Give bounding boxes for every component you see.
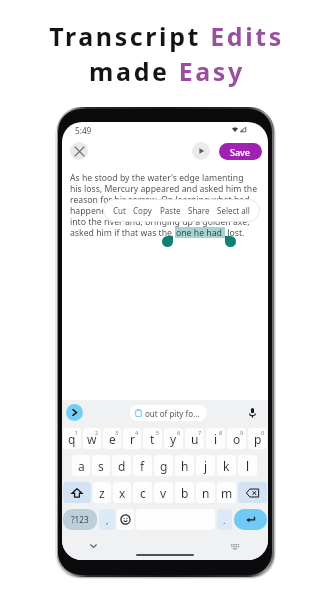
button[interactable]: [63, 482, 91, 503]
button[interactable]: Voice input: [246, 407, 258, 419]
button[interactable]: ?123: [63, 509, 97, 530]
staticText: y: [170, 431, 177, 447]
button[interactable]: Copy: [131, 199, 154, 222]
staticText: k: [223, 458, 230, 474]
button[interactable]: z: [93, 482, 111, 503]
staticText: into the river and, bringing up a golden…: [70, 216, 250, 227]
staticText: 5:49: [75, 125, 92, 136]
button[interactable]: [238, 482, 267, 503]
button[interactable]: h: [175, 455, 194, 476]
staticText: his loss, Mercury appeared and asked him…: [70, 183, 258, 194]
staticText: 4: [135, 429, 139, 436]
staticText: n: [202, 485, 210, 501]
staticText: l: [246, 458, 250, 474]
button[interactable]: Select all: [215, 199, 252, 222]
staticText: 7: [198, 429, 202, 436]
staticText: m: [221, 485, 233, 501]
button[interactable]: Hide keyboard: [87, 540, 99, 552]
button[interactable]: .: [217, 509, 232, 530]
button[interactable]: g: [154, 455, 173, 476]
staticText: Cut: [113, 205, 126, 216]
button[interactable]: m: [217, 482, 236, 503]
staticText: 3: [115, 429, 119, 436]
staticText: q: [68, 431, 76, 447]
button[interactable]: Switch keyboard: [229, 541, 241, 553]
button[interactable]: Close: [70, 142, 88, 160]
staticText: ?123: [71, 514, 89, 525]
button[interactable]: y: [164, 428, 183, 449]
staticText: Transcript Edits: [49, 19, 284, 53]
button[interactable]: a: [72, 455, 90, 476]
staticText: j: [204, 458, 208, 474]
button[interactable]: i: [206, 428, 225, 449]
button[interactable]: Save: [219, 143, 262, 160]
button[interactable]: f: [133, 455, 152, 476]
button[interactable]: c: [133, 482, 152, 503]
staticText: z: [99, 485, 105, 501]
staticText: Share: [188, 205, 210, 216]
staticText: g: [160, 458, 168, 474]
button[interactable]: s: [92, 455, 110, 476]
button[interactable]: Cut: [111, 199, 128, 222]
button[interactable]: ,: [99, 509, 115, 530]
staticText: a: [78, 458, 85, 474]
staticText: out of pity fo...: [145, 408, 200, 419]
button[interactable]: Share: [186, 199, 212, 222]
staticText: Paste: [160, 205, 181, 216]
staticText: 8: [219, 429, 223, 436]
staticText: made Easy: [89, 54, 245, 88]
button[interactable]: x: [113, 482, 131, 503]
staticText: one he had: [176, 227, 222, 238]
button[interactable]: o: [227, 428, 246, 449]
staticText: ,: [106, 514, 109, 526]
button[interactable]: l: [238, 455, 257, 476]
button[interactable]: Play: [192, 142, 210, 160]
staticText: 2: [95, 429, 99, 436]
button[interactable]: u: [185, 428, 204, 449]
staticText: happened, out of pity for his distress, …: [70, 205, 258, 216]
staticText: d: [118, 458, 126, 474]
button[interactable]: d: [112, 455, 131, 476]
button[interactable]: j: [196, 455, 215, 476]
staticText: c: [140, 485, 146, 501]
button[interactable]: More suggestions: [66, 404, 83, 421]
staticText: r: [130, 431, 135, 447]
staticText: o: [233, 431, 241, 447]
staticText: asked him if that was the: [70, 227, 175, 238]
staticText: f: [140, 458, 145, 474]
button[interactable]: Paste: [158, 199, 183, 222]
button[interactable]: b: [175, 482, 194, 503]
button[interactable]: e: [103, 428, 121, 449]
staticText: 5: [156, 429, 160, 436]
staticText: t: [150, 431, 155, 447]
button[interactable]: p: [248, 428, 267, 449]
staticText: e: [109, 431, 116, 447]
button[interactable]: q: [63, 428, 81, 449]
staticText: 0: [261, 429, 265, 436]
staticText: Select all: [217, 205, 250, 216]
staticText: 1: [75, 429, 79, 436]
staticText: As he stood by the water's edge lamentin…: [70, 172, 244, 183]
button[interactable]: k: [217, 455, 236, 476]
button[interactable]: [234, 509, 267, 530]
button[interactable]: t: [143, 428, 162, 449]
button[interactable]: r: [123, 428, 141, 449]
staticText: v: [160, 485, 167, 501]
staticText: b: [181, 485, 189, 501]
staticText: w: [87, 431, 97, 447]
staticText: Save: [230, 146, 251, 158]
button[interactable]: [117, 509, 134, 530]
staticText: s: [98, 458, 104, 474]
staticText: h: [181, 458, 189, 474]
staticText: i: [214, 431, 218, 447]
button[interactable]: w: [83, 428, 101, 449]
button[interactable]: v: [154, 482, 173, 503]
staticText: 9: [240, 429, 244, 436]
staticText: p: [254, 431, 262, 447]
button[interactable]: out of pity fo...: [130, 405, 207, 421]
button[interactable]: n: [196, 482, 215, 503]
staticText: Copy: [133, 205, 152, 216]
staticText: x: [119, 485, 126, 501]
staticText: 6: [177, 429, 181, 436]
